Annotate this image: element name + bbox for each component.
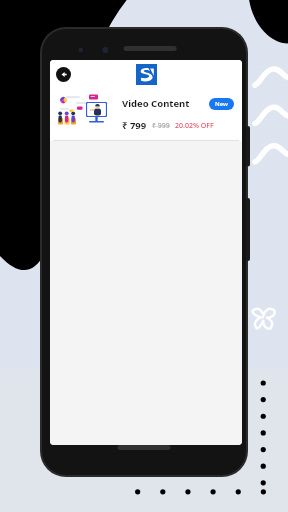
button[interactable]: Video Content xyxy=(50,88,242,140)
staticText: Video Content xyxy=(122,97,190,110)
staticText: 20.02% OFF xyxy=(175,121,214,131)
button[interactable]: Logo xyxy=(136,64,157,85)
staticText: New xyxy=(215,100,228,108)
staticText: ₹ 999 xyxy=(152,121,170,131)
button[interactable]: Back xyxy=(56,67,71,82)
staticText: ₹ 799 xyxy=(122,119,147,132)
button[interactable]: New xyxy=(209,98,234,110)
